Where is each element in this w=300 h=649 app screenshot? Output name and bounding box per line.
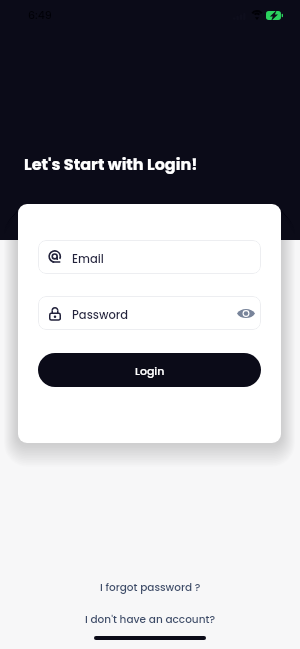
staticText: Password: [72, 307, 128, 323]
button[interactable]: Password: [38, 296, 261, 330]
button[interactable]: I don't have an account?: [0, 612, 300, 627]
staticText: I forgot password ?: [100, 580, 201, 595]
button[interactable]: Show password: [232, 306, 256, 321]
staticText: 6:49: [28, 7, 52, 22]
staticText: Login: [135, 363, 165, 378]
button[interactable]: I forgot password ?: [0, 580, 300, 595]
staticText: Let's Start with Login!: [24, 153, 198, 175]
staticText: I don't have an account?: [85, 612, 216, 627]
button[interactable]: Email: [38, 240, 261, 274]
staticText: Email: [72, 251, 104, 267]
button[interactable]: Login: [38, 353, 261, 387]
